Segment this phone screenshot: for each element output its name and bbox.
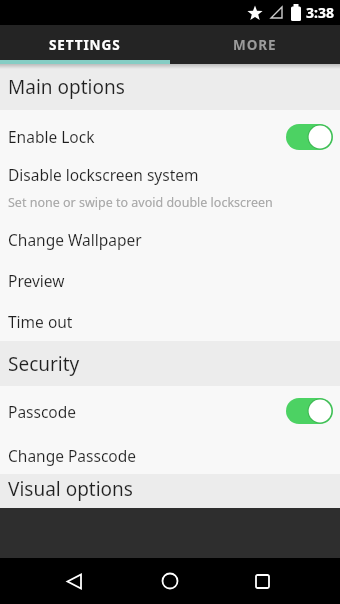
button[interactable]: MORE [170,25,340,64]
button[interactable] [255,574,270,589]
staticText: Visual options [8,476,133,502]
button[interactable]: Time out [0,301,340,341]
staticText: SETTINGS [49,36,121,54]
button[interactable]: Change Passcode [0,436,340,474]
staticText: Change Wallpaper [8,229,142,250]
staticText: Passcode [8,401,286,422]
staticText: Time out [8,311,73,332]
button[interactable]: Enable Lock [0,110,340,163]
button[interactable] [66,573,83,590]
staticText: Set none or swipe to avoid double locksc… [8,194,273,211]
staticText: Change Passcode [8,445,136,466]
button[interactable]: Preview [0,260,340,301]
button[interactable] [161,572,179,590]
staticText: Security [8,351,80,377]
staticText: Preview [8,270,65,291]
button[interactable]: SETTINGS [0,25,170,64]
staticText: MORE [233,36,277,54]
staticText: Disable lockscreen system [8,164,199,185]
staticText: 3:38 [306,3,334,22]
button[interactable]: Disable lockscreen system [0,163,340,218]
button[interactable]: Change Wallpaper [0,218,340,260]
staticText: Main options [8,74,125,100]
staticText: Enable Lock [8,126,286,147]
button[interactable]: Passcode [0,386,340,436]
